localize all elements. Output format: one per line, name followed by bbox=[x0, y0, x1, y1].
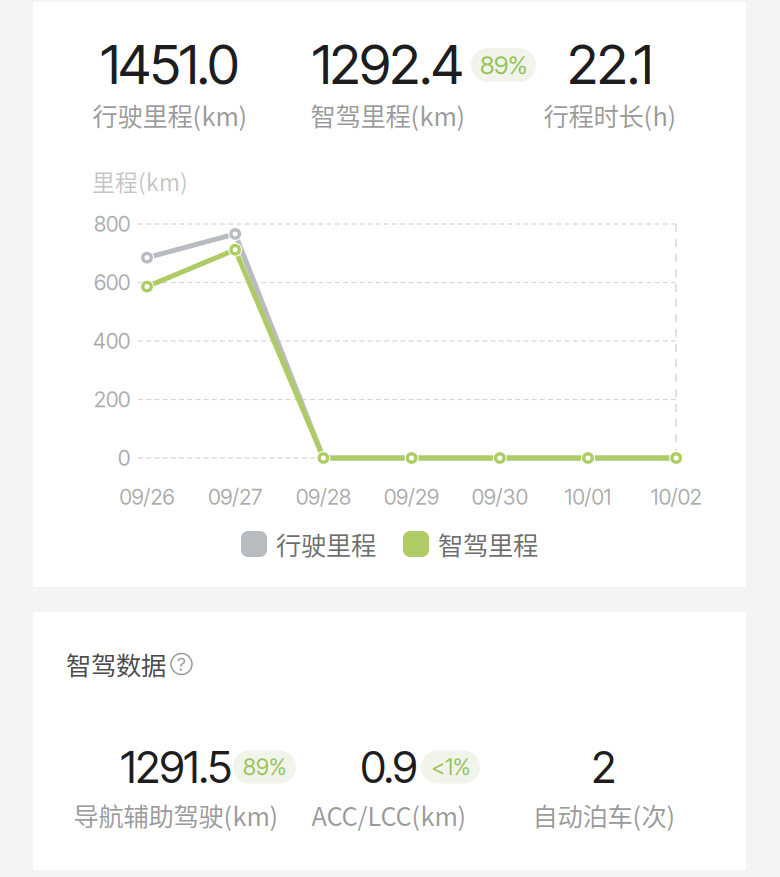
staticText: 09/27 bbox=[208, 484, 262, 510]
staticText: ACC/LCC(km) bbox=[311, 797, 466, 833]
staticText: 22.1 bbox=[567, 31, 653, 97]
staticText: 600 bbox=[94, 270, 130, 295]
staticText: 0 bbox=[118, 445, 130, 471]
staticText: 09/28 bbox=[296, 484, 351, 510]
staticText: 智驾里程 bbox=[438, 526, 538, 562]
staticText: 400 bbox=[93, 328, 130, 354]
staticText: 智驾数据 bbox=[66, 646, 166, 682]
staticText: 2 bbox=[591, 740, 616, 794]
staticText: 1291.5 bbox=[120, 740, 231, 794]
staticText: 行驶里程(km) bbox=[92, 97, 247, 133]
staticText: 09/26 bbox=[119, 484, 174, 510]
button[interactable]: 智驾数据 bbox=[66, 646, 192, 682]
staticText: <1% bbox=[431, 753, 470, 781]
staticText: 自动泊车(次) bbox=[532, 797, 675, 833]
staticText: 1451.0 bbox=[100, 31, 239, 97]
staticText: 智驾里程(km) bbox=[310, 97, 465, 133]
staticText: 09/29 bbox=[384, 484, 439, 510]
staticText: 09/30 bbox=[472, 484, 528, 510]
staticText: 89% bbox=[243, 753, 286, 781]
staticText: 800 bbox=[94, 211, 130, 237]
staticText: 89% bbox=[480, 50, 527, 80]
staticText: 导航辅助驾驶(km) bbox=[73, 797, 278, 833]
staticText: 行程时长(h) bbox=[543, 97, 676, 133]
staticText: 10/01 bbox=[564, 484, 611, 510]
staticText: 0.9 bbox=[360, 740, 417, 794]
staticText: 里程(km) bbox=[92, 165, 188, 197]
staticText: 200 bbox=[94, 387, 130, 412]
staticText: ? bbox=[177, 653, 186, 675]
staticText: 行驶里程 bbox=[276, 526, 376, 562]
staticText: 1292.4 bbox=[312, 31, 464, 97]
staticText: 10/02 bbox=[651, 484, 702, 510]
